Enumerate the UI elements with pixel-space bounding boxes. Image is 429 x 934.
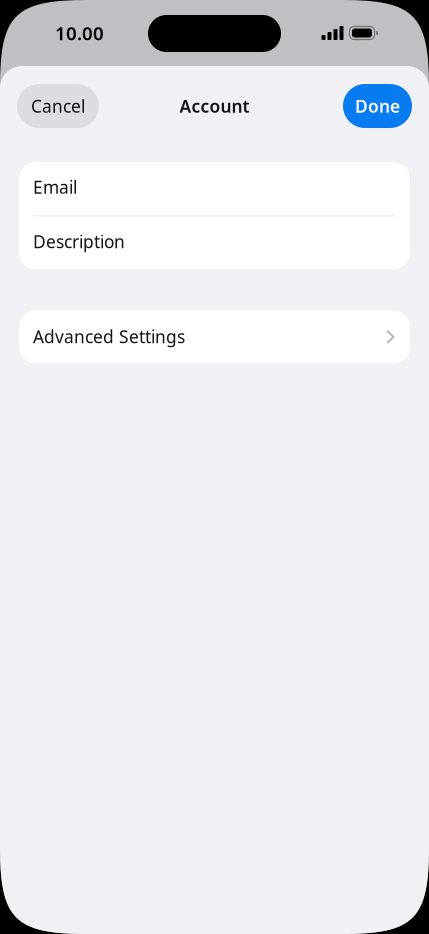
button[interactable]: Cancel <box>17 84 99 128</box>
staticText: Account <box>179 94 249 117</box>
button[interactable]: Email <box>19 162 410 215</box>
staticText: Description <box>33 230 125 253</box>
button[interactable]: Description <box>19 216 410 269</box>
button[interactable]: Advanced Settings <box>19 310 410 363</box>
staticText: Done <box>355 94 400 117</box>
staticText: 10.00 <box>55 21 104 45</box>
staticText: Advanced Settings <box>33 325 185 348</box>
staticText: Cancel <box>31 94 85 117</box>
staticText: Email <box>33 175 77 198</box>
button[interactable]: Done <box>343 84 412 128</box>
